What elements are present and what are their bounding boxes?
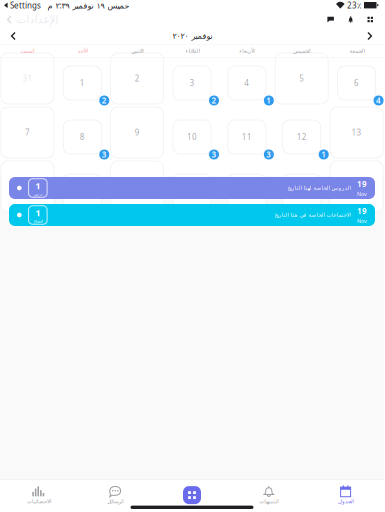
button[interactable]: Day 18 (228, 174, 266, 208)
button[interactable]: Day 8 (63, 120, 101, 154)
button[interactable]: Day 1 (63, 66, 101, 100)
button[interactable]: Day 19 (283, 174, 321, 208)
staticText: الخميس (293, 48, 311, 54)
button[interactable]: التنبيهات (230, 482, 307, 508)
staticText: 11 (242, 132, 252, 142)
staticText: 20 (352, 181, 362, 192)
staticText: 10 (187, 132, 197, 142)
staticText: الجدول (338, 498, 354, 504)
staticText: نوفمبر ٢٠٢٠ (172, 31, 212, 41)
button[interactable]: الجدول (307, 482, 384, 508)
button[interactable]: Day 6 (338, 66, 376, 100)
button[interactable]: Apps (154, 485, 230, 506)
staticText: الأحد (77, 48, 87, 54)
staticText: 1 (321, 149, 326, 160)
button[interactable]: Day 2 (111, 53, 164, 104)
staticText: 3 (211, 149, 216, 160)
staticText: 13 (352, 127, 362, 138)
staticText: 2 (102, 95, 107, 106)
staticText: الإعدادات (16, 13, 58, 25)
staticText: الثلاثاء (185, 48, 199, 54)
button[interactable]: Day 10 (173, 120, 211, 154)
button[interactable]: 1 (9, 177, 375, 199)
staticText: التنبيهات (259, 498, 279, 504)
staticText: اجتماع (33, 219, 42, 223)
staticText: 14 (22, 181, 32, 192)
staticText: 3 (102, 149, 107, 160)
button[interactable]: Day 4 (228, 66, 266, 100)
staticText: 19 (357, 179, 367, 189)
button[interactable]: الاحصائيات (0, 482, 77, 508)
staticText: 1 (35, 206, 40, 219)
button[interactable]: الإعدادات (0, 10, 58, 28)
button[interactable]: Next month (360, 28, 381, 43)
button[interactable]: Apps (360, 12, 380, 27)
button[interactable]: Day 15 (63, 174, 101, 208)
staticText: الاجتماعات الخاصة في هذا التاريخ (274, 212, 350, 218)
staticText: 2 (211, 95, 216, 106)
staticText: 8 (80, 132, 85, 142)
staticText: 6 (354, 78, 359, 88)
button[interactable]: Messages (320, 12, 341, 27)
button[interactable]: Day 14 (1, 161, 54, 212)
button[interactable]: Day 11 (228, 120, 266, 154)
staticText: Nov (357, 190, 367, 197)
button[interactable]: Day 13 (330, 107, 383, 158)
button[interactable]: Day 3 (173, 66, 211, 100)
staticText: 12 (297, 132, 307, 142)
staticText: 4 (244, 78, 249, 88)
staticText: درس (33, 192, 42, 196)
button[interactable]: Day 12 (283, 120, 321, 154)
staticText: 5 (299, 73, 304, 84)
staticText: 1 (266, 95, 271, 106)
button[interactable]: الرسائل (77, 482, 154, 508)
staticText: 1 (80, 78, 85, 88)
staticText: الجمعة (349, 48, 364, 54)
staticText: Settings (8, 0, 41, 11)
staticText: الاحصائيات (26, 498, 50, 504)
staticText: 3 (189, 78, 194, 88)
staticText: 4 (376, 95, 381, 106)
staticText: 3 (266, 149, 271, 160)
staticText: 19 (357, 206, 367, 216)
staticText: 9 (135, 127, 140, 138)
staticText: ‫خميس ١٩ نوفمبر ٢:٣٩ م‬ (47, 0, 129, 11)
staticText: الدروس الخاصة لهذا التاريخ (287, 185, 350, 191)
button[interactable]: Day 9 (111, 107, 164, 158)
staticText: 2 (135, 73, 140, 84)
button[interactable]: Day 5 (275, 53, 328, 104)
button[interactable]: Previous month (3, 28, 24, 43)
button[interactable]: Day 16 (111, 161, 164, 212)
button[interactable]: Day 7 (1, 107, 54, 158)
staticText: السبت (20, 48, 35, 54)
staticText: 31 (22, 73, 32, 84)
button[interactable]: Notifications (341, 12, 360, 27)
staticText: 19 (297, 186, 307, 196)
staticText: 7 (25, 127, 30, 138)
button[interactable]: 1 (9, 204, 375, 226)
staticText: 23٪ (345, 0, 364, 11)
staticText: الاثنين (131, 48, 144, 54)
staticText: الأربعاء (239, 48, 255, 54)
staticText: 1 (35, 179, 40, 192)
button[interactable]: Day 17 (173, 174, 211, 208)
button[interactable]: Day 20 (330, 161, 383, 212)
staticText: Nov (357, 217, 367, 224)
staticText: الرسائل (107, 498, 124, 504)
